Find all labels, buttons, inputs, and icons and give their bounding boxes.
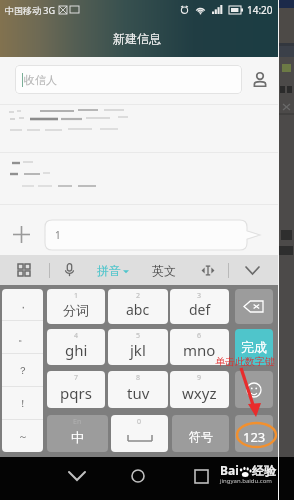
staticText: 123 [243,428,266,446]
staticText: 3 [197,291,202,301]
button[interactable]: 7 [47,371,105,408]
staticText: En [73,417,82,427]
staticText: 分词 [63,302,89,318]
staticText: ， [18,298,28,311]
button[interactable]: 6 [170,329,229,365]
staticText: 14:20 [247,3,273,17]
button[interactable]: 123 [235,415,273,452]
button[interactable]: 完成 [235,329,273,365]
button[interactable]: ～ [2,420,43,452]
staticText: 9 [197,373,202,383]
button[interactable]: 3 [170,289,229,324]
button[interactable]: Backspace [235,289,273,324]
staticText: ？ [18,364,28,377]
staticText: 中 [71,429,84,445]
button[interactable]: Add attachment [7,220,36,249]
staticText: 5 [136,331,141,341]
staticText: 。 [18,331,28,344]
staticText: 完成 [241,339,267,355]
button[interactable]: 1 [47,289,105,324]
button[interactable]: 拼音 [97,255,135,285]
staticText: ～ [18,430,28,443]
staticText: 1 [74,291,79,301]
button[interactable]: 收信人 [15,65,242,94]
staticText: 7 [74,373,79,383]
button[interactable]: Emoji [235,371,273,408]
button[interactable]: 8 [108,371,168,408]
button[interactable]: Recents [184,459,218,493]
staticText: pqrs [60,383,92,403]
button[interactable]: Keyboard layout [8,255,39,285]
button[interactable]: 4 [47,329,105,365]
staticText: tuv [127,383,150,403]
staticText: 8 [136,373,141,383]
staticText: 经验 [252,463,276,478]
button[interactable]: 英文 [147,255,181,285]
staticText: 收信人 [24,73,57,87]
staticText: wxyz [182,383,217,403]
staticText: mno [183,340,216,360]
staticText: 新建信息 [113,31,161,46]
button[interactable]: 0 [111,415,168,452]
staticText: jingyan.baidu.com [220,477,272,485]
staticText: ！ [18,397,28,410]
staticText: 2 [136,291,141,301]
button[interactable]: Back [60,459,94,493]
button[interactable]: Hide keyboard [236,255,268,285]
button[interactable]: Move cursor [193,255,223,285]
button[interactable]: En [47,415,108,452]
button[interactable]: 2 [108,289,168,324]
staticText: jkl [130,340,146,360]
staticText: 6 [197,331,202,341]
button[interactable]: ， [2,289,43,320]
staticText: 符号 [189,429,213,444]
staticText: 单击此数字键 [215,355,275,368]
button[interactable]: ？ [2,354,43,386]
button[interactable]: 。 [2,321,43,353]
staticText: 1 [55,228,61,242]
staticText: Bai [220,462,239,478]
button[interactable]: Pick contact [246,65,274,94]
button[interactable]: 1 [45,220,263,250]
staticText: def [189,300,211,319]
staticText: ghi [65,340,88,360]
staticText: abc [126,300,150,319]
staticText: 4 [74,331,79,341]
staticText: 0 [137,417,142,427]
button[interactable]: 5 [108,329,168,365]
button[interactable]: ！ [2,387,43,419]
button[interactable]: Home [121,459,155,493]
staticText: 拼音 [97,263,121,278]
staticText: 英文 [152,263,176,278]
button[interactable]: Voice input [54,255,84,285]
button[interactable]: 符号 [172,415,229,452]
staticText: 中国移动 3G [5,4,56,16]
button[interactable]: 9 [170,371,229,408]
